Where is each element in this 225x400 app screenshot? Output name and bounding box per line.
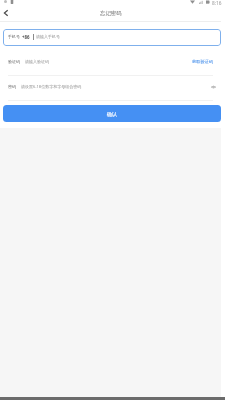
staticText: 确认 (107, 111, 117, 117)
staticText: 获取验证码 (192, 59, 213, 64)
staticText: 请设置6-18位数字和字母组合密码 (21, 84, 82, 89)
staticText: 请输入验证码 (25, 59, 49, 64)
staticText: 忘记密码 (100, 10, 122, 17)
staticText: 验证码 (8, 59, 20, 64)
button[interactable]: 验证码 (8, 47, 213, 75)
staticText: 8:16 (212, 0, 222, 7)
button[interactable]: 密码 (8, 74, 215, 99)
staticText: 请输入手机号 (36, 34, 60, 39)
button[interactable]: Show password (209, 82, 218, 91)
staticText: 密码 (8, 84, 16, 89)
staticText: 手机号 (8, 34, 20, 39)
button[interactable]: 确认 (3, 105, 221, 122)
button[interactable]: 手机号 (3, 29, 221, 46)
button[interactable]: Back (0, 6, 12, 19)
staticText: +86 (22, 34, 30, 40)
